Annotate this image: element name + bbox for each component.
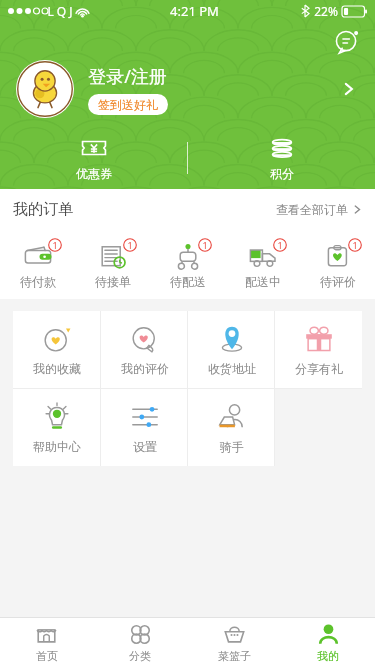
staticText: 积分 <box>270 166 294 181</box>
staticText: 优惠券 <box>76 166 112 181</box>
staticText: 1 <box>127 239 133 251</box>
staticText: 我的 <box>317 649 339 663</box>
button[interactable]: Messages <box>331 26 363 58</box>
button[interactable]: 积分 <box>265 131 299 185</box>
staticText: 我的评价 <box>121 361 169 376</box>
staticText: 配送中 <box>245 274 281 289</box>
button[interactable]: 1 <box>245 236 281 293</box>
button[interactable]: 我的收藏 <box>13 311 101 388</box>
button[interactable]: 帮助中心 <box>13 389 101 466</box>
staticText: 分享有礼 <box>295 361 343 376</box>
button[interactable]: 菜篮子 <box>187 618 281 667</box>
staticText: 1 <box>352 239 358 251</box>
staticText: L Q J <box>47 3 73 19</box>
button[interactable]: 分享有礼 <box>275 311 362 388</box>
button[interactable]: 查看全部订单 <box>276 196 362 223</box>
button[interactable]: 1 <box>20 236 56 293</box>
staticText: 22% <box>314 3 338 19</box>
staticText: 待接单 <box>95 274 131 289</box>
button[interactable]: 1 <box>320 236 356 293</box>
button[interactable]: 优惠券 <box>72 131 116 185</box>
staticText: 收货地址 <box>208 361 256 376</box>
button[interactable]: 我的评价 <box>101 311 188 388</box>
button[interactable]: 分类 <box>93 618 187 667</box>
button[interactable]: 登录/注册 <box>0 58 375 120</box>
staticText: 登录/注册 <box>88 64 167 89</box>
staticText: 分类 <box>129 649 151 663</box>
staticText: 查看全部订单 <box>276 202 348 217</box>
button[interactable]: 1 <box>170 236 206 293</box>
other: More <box>331 71 367 107</box>
staticText: 首页 <box>36 649 58 663</box>
staticText: 4:21 PM <box>170 2 219 20</box>
staticText: 待付款 <box>20 274 56 289</box>
staticText: 1 <box>52 239 58 251</box>
button[interactable]: 收货地址 <box>188 311 275 388</box>
staticText: 1 <box>202 239 208 251</box>
staticText: 待配送 <box>170 274 206 289</box>
button[interactable]: 设置 <box>101 389 188 466</box>
button[interactable]: 1 <box>95 236 131 293</box>
staticText: 菜篮子 <box>218 649 251 663</box>
staticText: 我的订单 <box>13 200 73 219</box>
button[interactable]: 签到送好礼 <box>88 94 168 115</box>
button[interactable]: 骑手 <box>188 389 275 466</box>
staticText: 我的收藏 <box>33 361 81 376</box>
staticText: 签到送好礼 <box>98 97 158 112</box>
staticText: 帮助中心 <box>33 439 81 454</box>
staticText: 1 <box>277 239 283 251</box>
button[interactable]: 我的 <box>281 618 375 667</box>
button[interactable]: 首页 <box>0 618 93 667</box>
staticText: 骑手 <box>220 439 244 454</box>
staticText: 设置 <box>133 439 157 454</box>
staticText: 待评价 <box>320 274 356 289</box>
